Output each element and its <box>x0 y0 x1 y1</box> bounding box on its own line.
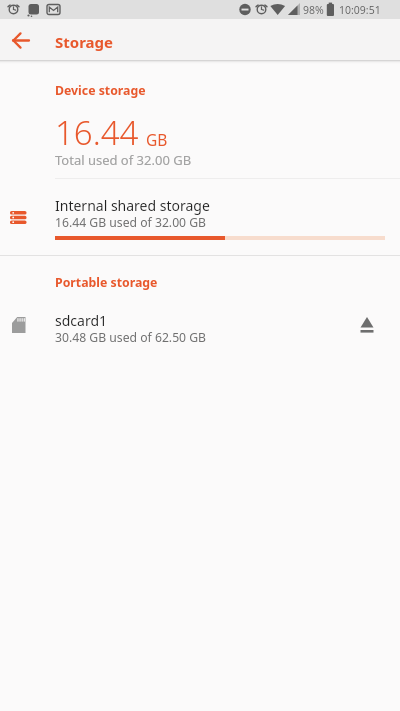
button[interactable]: Internal shared storage <box>0 186 400 250</box>
button[interactable] <box>350 308 384 342</box>
button[interactable] <box>5 24 37 56</box>
staticText: 16.44 GB used of 32.00 GB <box>55 214 207 231</box>
staticText: GB <box>146 129 168 150</box>
staticText: 30.48 GB used of 62.50 GB <box>55 329 207 346</box>
staticText: Device storage <box>55 82 146 99</box>
staticText: 10:09:51 <box>339 3 381 17</box>
staticText: Total used of 32.00 GB <box>55 151 192 169</box>
staticText: Portable storage <box>55 274 158 291</box>
button[interactable]: sdcard1 <box>0 300 400 352</box>
staticText: 16.44 <box>55 110 139 155</box>
staticText: Internal shared storage <box>55 196 210 215</box>
staticText: sdcard1 <box>55 311 108 330</box>
staticText: Storage <box>55 32 113 52</box>
staticText: 98% <box>303 3 324 17</box>
